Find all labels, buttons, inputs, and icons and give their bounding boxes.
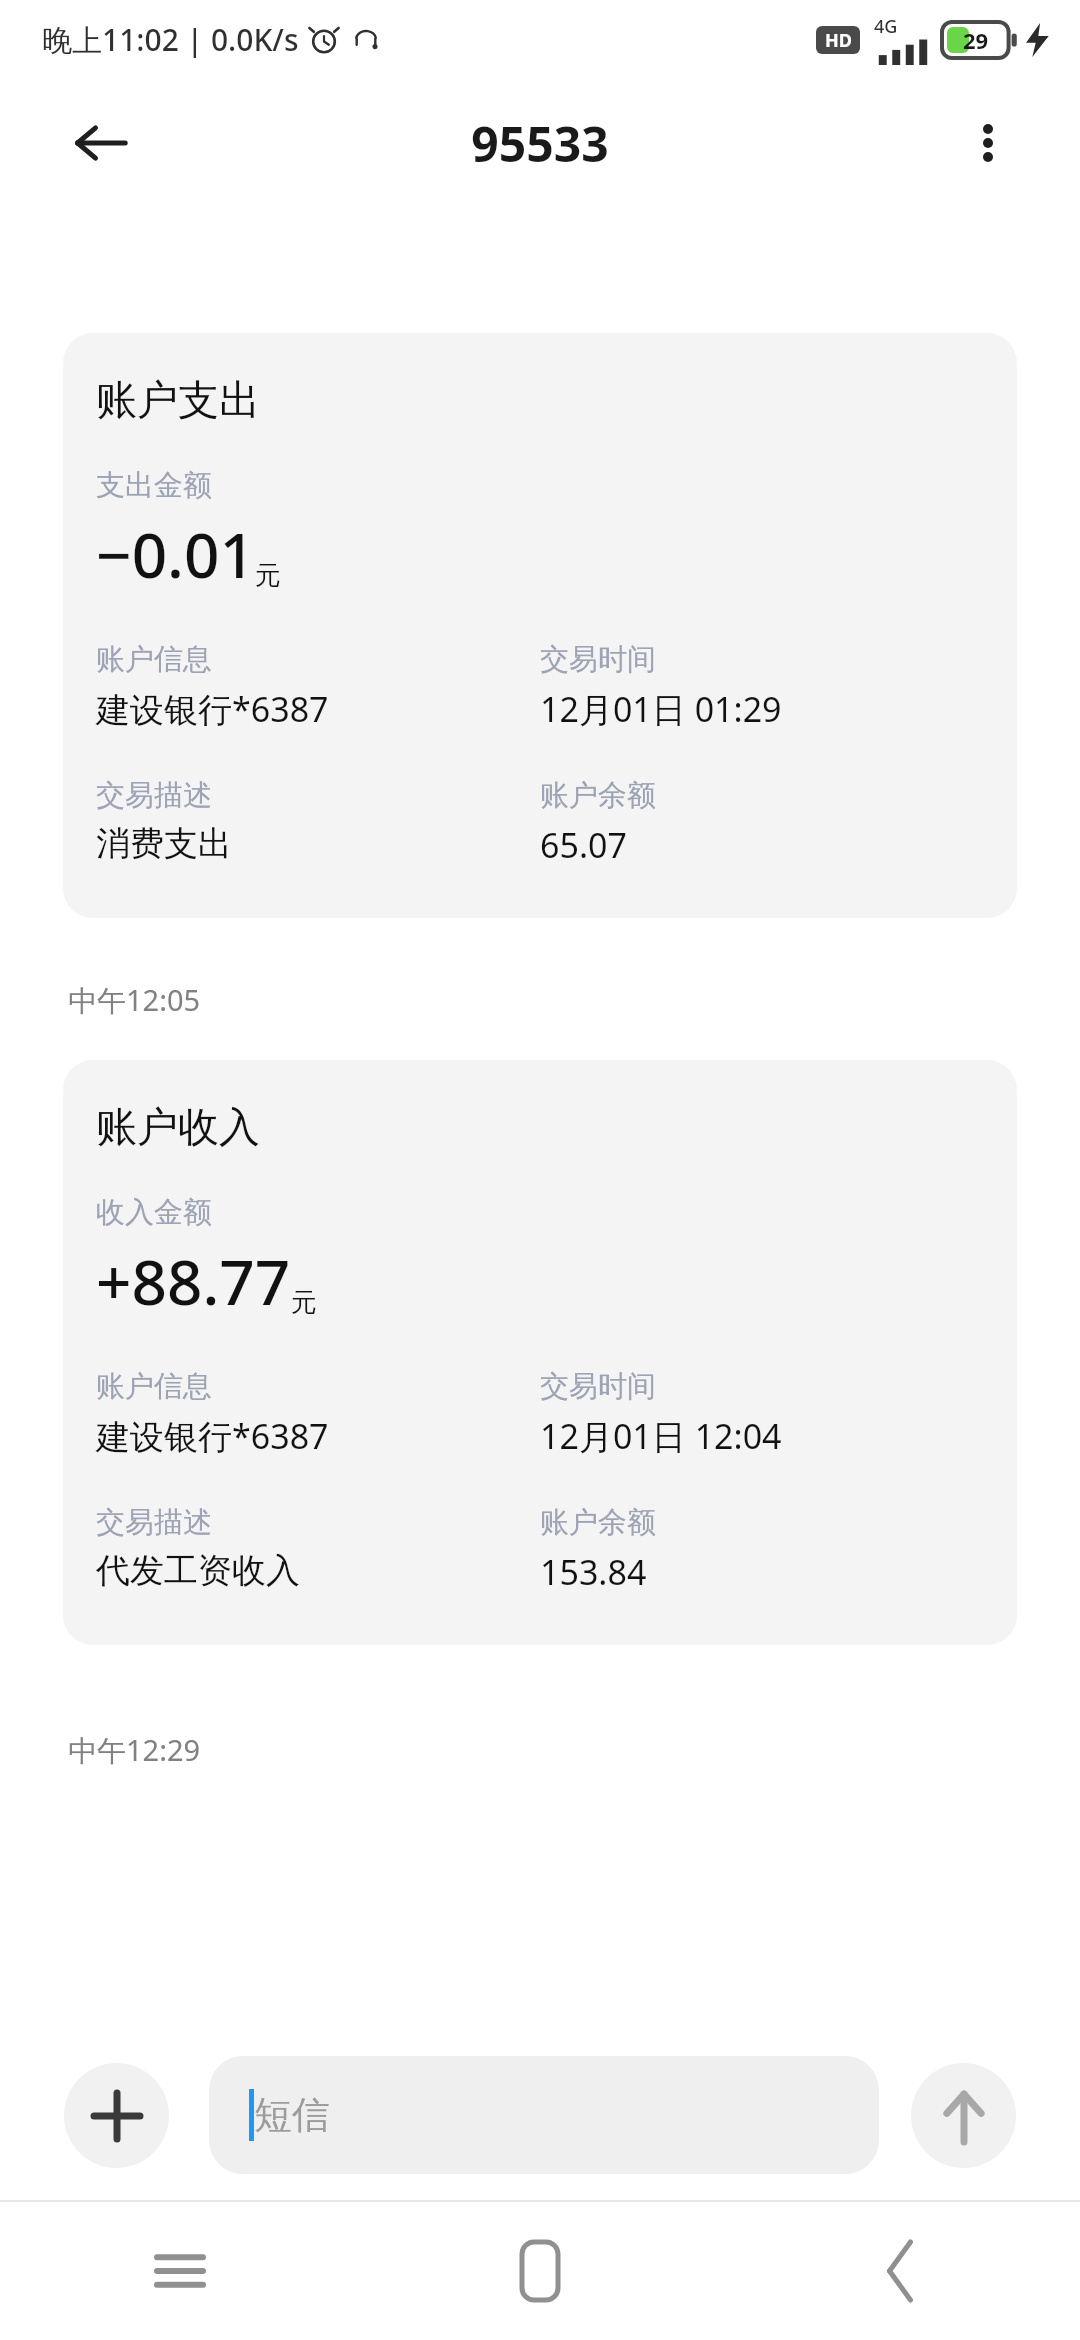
staticText: 短信: [254, 2091, 330, 2139]
staticText: 代发工资收入: [96, 1549, 300, 1592]
staticText: 晚上11:02 | 0.0K/s: [42, 19, 299, 60]
staticText: 收入金额: [96, 1194, 212, 1231]
staticText: 账户余额: [540, 777, 656, 814]
staticText: 交易描述: [96, 1504, 212, 1541]
button[interactable]: More options: [948, 103, 1028, 183]
button[interactable]: Home: [360, 2202, 720, 2340]
staticText: 95533: [471, 111, 609, 176]
staticText: 65.07: [540, 822, 627, 868]
staticText: 12月01日 12:04: [540, 1413, 782, 1459]
button[interactable]: 账户支出: [63, 333, 1017, 918]
staticText: 建设银行*6387: [96, 686, 329, 732]
staticText: 元: [255, 559, 281, 592]
staticText: 29: [963, 25, 989, 55]
staticText: 消费支出: [96, 822, 232, 865]
staticText: 元: [291, 1286, 317, 1319]
staticText: −0.01: [96, 512, 255, 596]
button[interactable]: Add attachment: [64, 2063, 169, 2168]
staticText: 支出金额: [96, 467, 212, 504]
staticText: 交易时间: [540, 641, 656, 678]
staticText: 交易描述: [96, 777, 212, 814]
staticText: HD: [825, 28, 852, 53]
staticText: 账户余额: [540, 1504, 656, 1541]
staticText: 中午12:29: [68, 1730, 201, 1770]
staticText: 4G: [874, 14, 898, 39]
button[interactable]: Back: [720, 2202, 1080, 2340]
staticText: 账户信息: [96, 1368, 212, 1405]
staticText: 中午12:05: [68, 980, 201, 1020]
button[interactable]: Back: [60, 103, 140, 183]
staticText: 建设银行*6387: [96, 1413, 329, 1459]
staticText: 账户收入: [96, 1102, 260, 1154]
staticText: +88.77: [96, 1239, 291, 1323]
staticText: 交易时间: [540, 1368, 656, 1405]
staticText: 账户支出: [96, 375, 260, 427]
button[interactable]: 账户收入: [63, 1060, 1017, 1645]
button[interactable]: 短信: [209, 2056, 879, 2174]
button[interactable]: Recent apps: [0, 2202, 360, 2340]
staticText: 153.84: [540, 1549, 647, 1595]
staticText: 账户信息: [96, 641, 212, 678]
button[interactable]: Send: [911, 2063, 1016, 2168]
staticText: 12月01日 01:29: [540, 686, 782, 732]
